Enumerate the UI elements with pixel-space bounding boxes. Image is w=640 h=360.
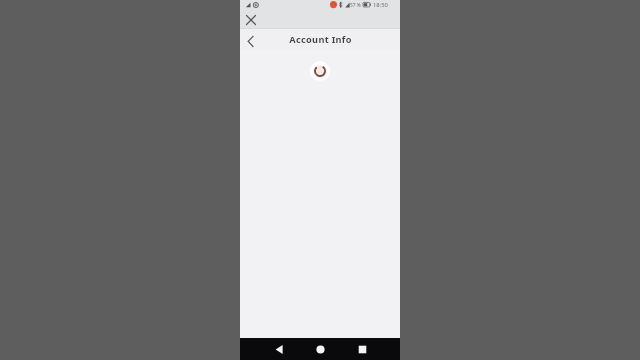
button[interactable]: [243, 12, 259, 28]
staticText: 18:50: [373, 1, 388, 9]
button[interactable]: [352, 339, 372, 359]
button[interactable]: [243, 32, 258, 47]
staticText: Account Info: [289, 33, 352, 46]
button[interactable]: [310, 339, 330, 359]
staticText: 57 %: [350, 2, 361, 9]
button[interactable]: [269, 339, 289, 359]
